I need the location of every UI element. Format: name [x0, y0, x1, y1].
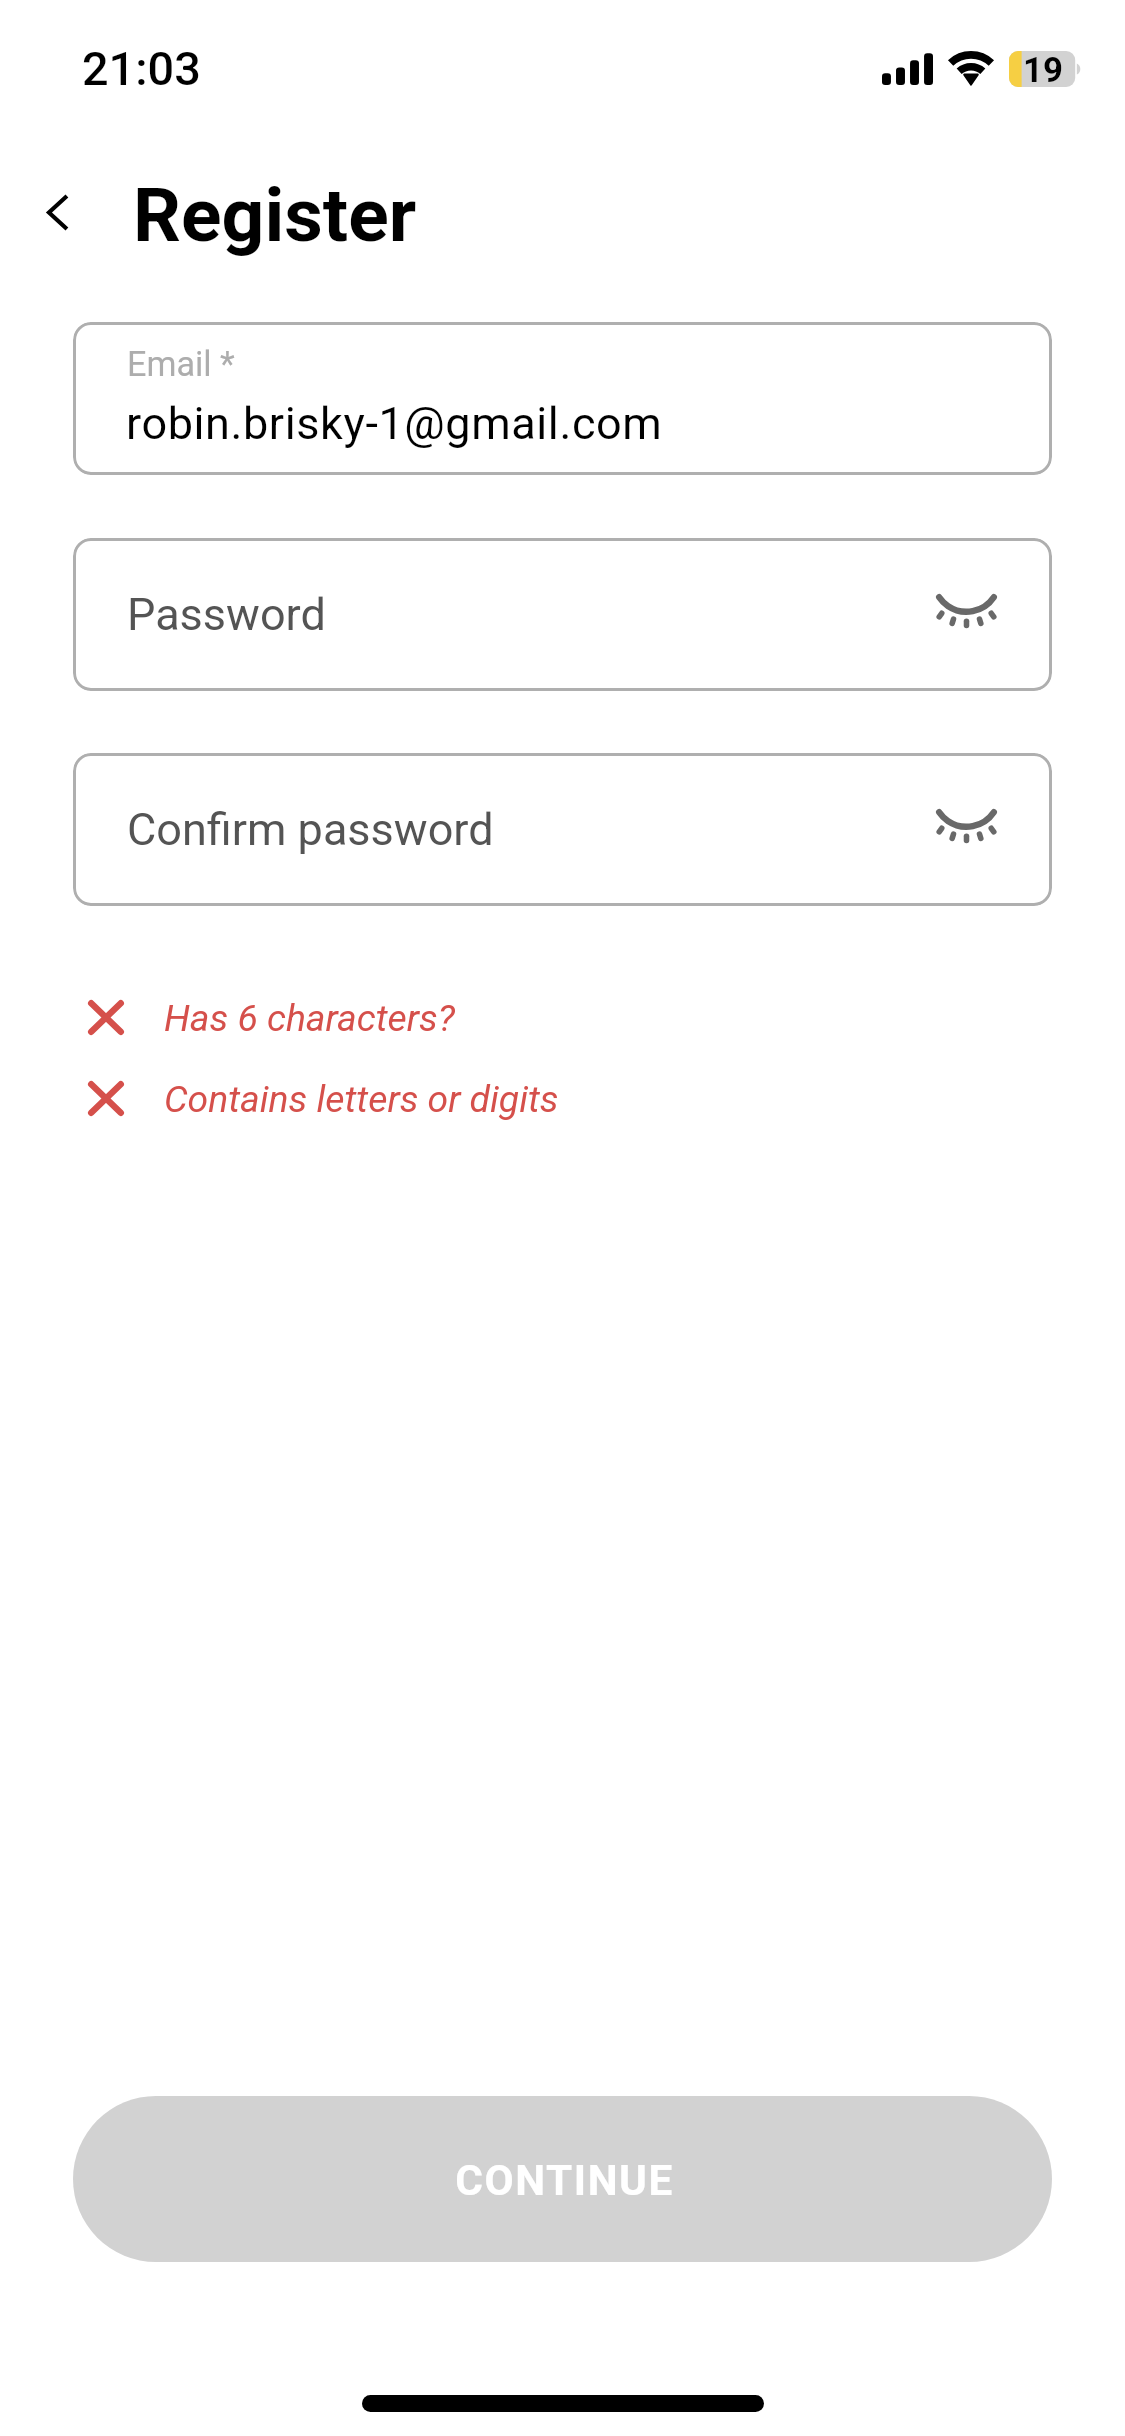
staticText: CONTINUE	[455, 2156, 674, 2206]
staticText: Register	[133, 171, 417, 259]
staticText: robin.brisky-1@gmail.com	[126, 397, 663, 450]
staticText: Password	[127, 588, 326, 641]
button[interactable]: Show password	[912, 555, 1020, 669]
button[interactable]: Back	[5, 167, 110, 257]
staticText: 19	[1023, 50, 1063, 86]
button[interactable]: Confirm password	[73, 753, 1052, 906]
button[interactable]: CONTINUE	[73, 2096, 1052, 2262]
staticText: Contains letters or digits	[164, 1077, 559, 1121]
button[interactable]: Show password	[912, 770, 1020, 884]
staticText: Confirm password	[127, 803, 494, 856]
staticText: Has 6 characters?	[164, 996, 455, 1040]
staticText: Email *	[127, 344, 235, 384]
button[interactable]: Password	[73, 538, 1052, 691]
staticText: 21:03	[82, 42, 201, 97]
button[interactable]: Email *	[73, 322, 1052, 475]
